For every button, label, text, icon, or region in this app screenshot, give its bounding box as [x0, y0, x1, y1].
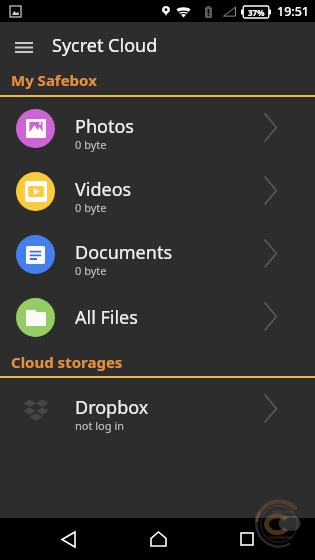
button[interactable]: Home — [137, 518, 179, 560]
staticText: 0 byte — [75, 137, 107, 152]
staticText: not log in — [75, 418, 125, 433]
staticText: 0 byte — [75, 263, 107, 278]
button[interactable]: Videos — [0, 160, 315, 223]
staticText: Photos — [75, 114, 134, 139]
staticText: Sycret Cloud — [52, 33, 158, 58]
button[interactable]: All Files — [0, 286, 315, 349]
button[interactable]: Photos — [0, 97, 315, 160]
staticText: All Files — [75, 305, 138, 330]
button[interactable]: Open navigation drawer — [7, 27, 41, 61]
staticText: Cloud storages — [11, 352, 123, 372]
staticText: Videos — [75, 177, 132, 202]
staticText: 0 byte — [75, 200, 107, 215]
staticText: My Safebox — [11, 70, 97, 90]
staticText: 19:51 — [277, 3, 310, 20]
staticText: 37% — [248, 7, 265, 18]
staticText: Dropbox — [75, 395, 149, 420]
button[interactable]: Dropbox — [0, 378, 315, 441]
button[interactable]: Documents — [0, 223, 315, 286]
button[interactable]: Back — [47, 518, 89, 560]
staticText: Documents — [75, 240, 173, 265]
button[interactable]: Recent apps — [226, 518, 268, 560]
